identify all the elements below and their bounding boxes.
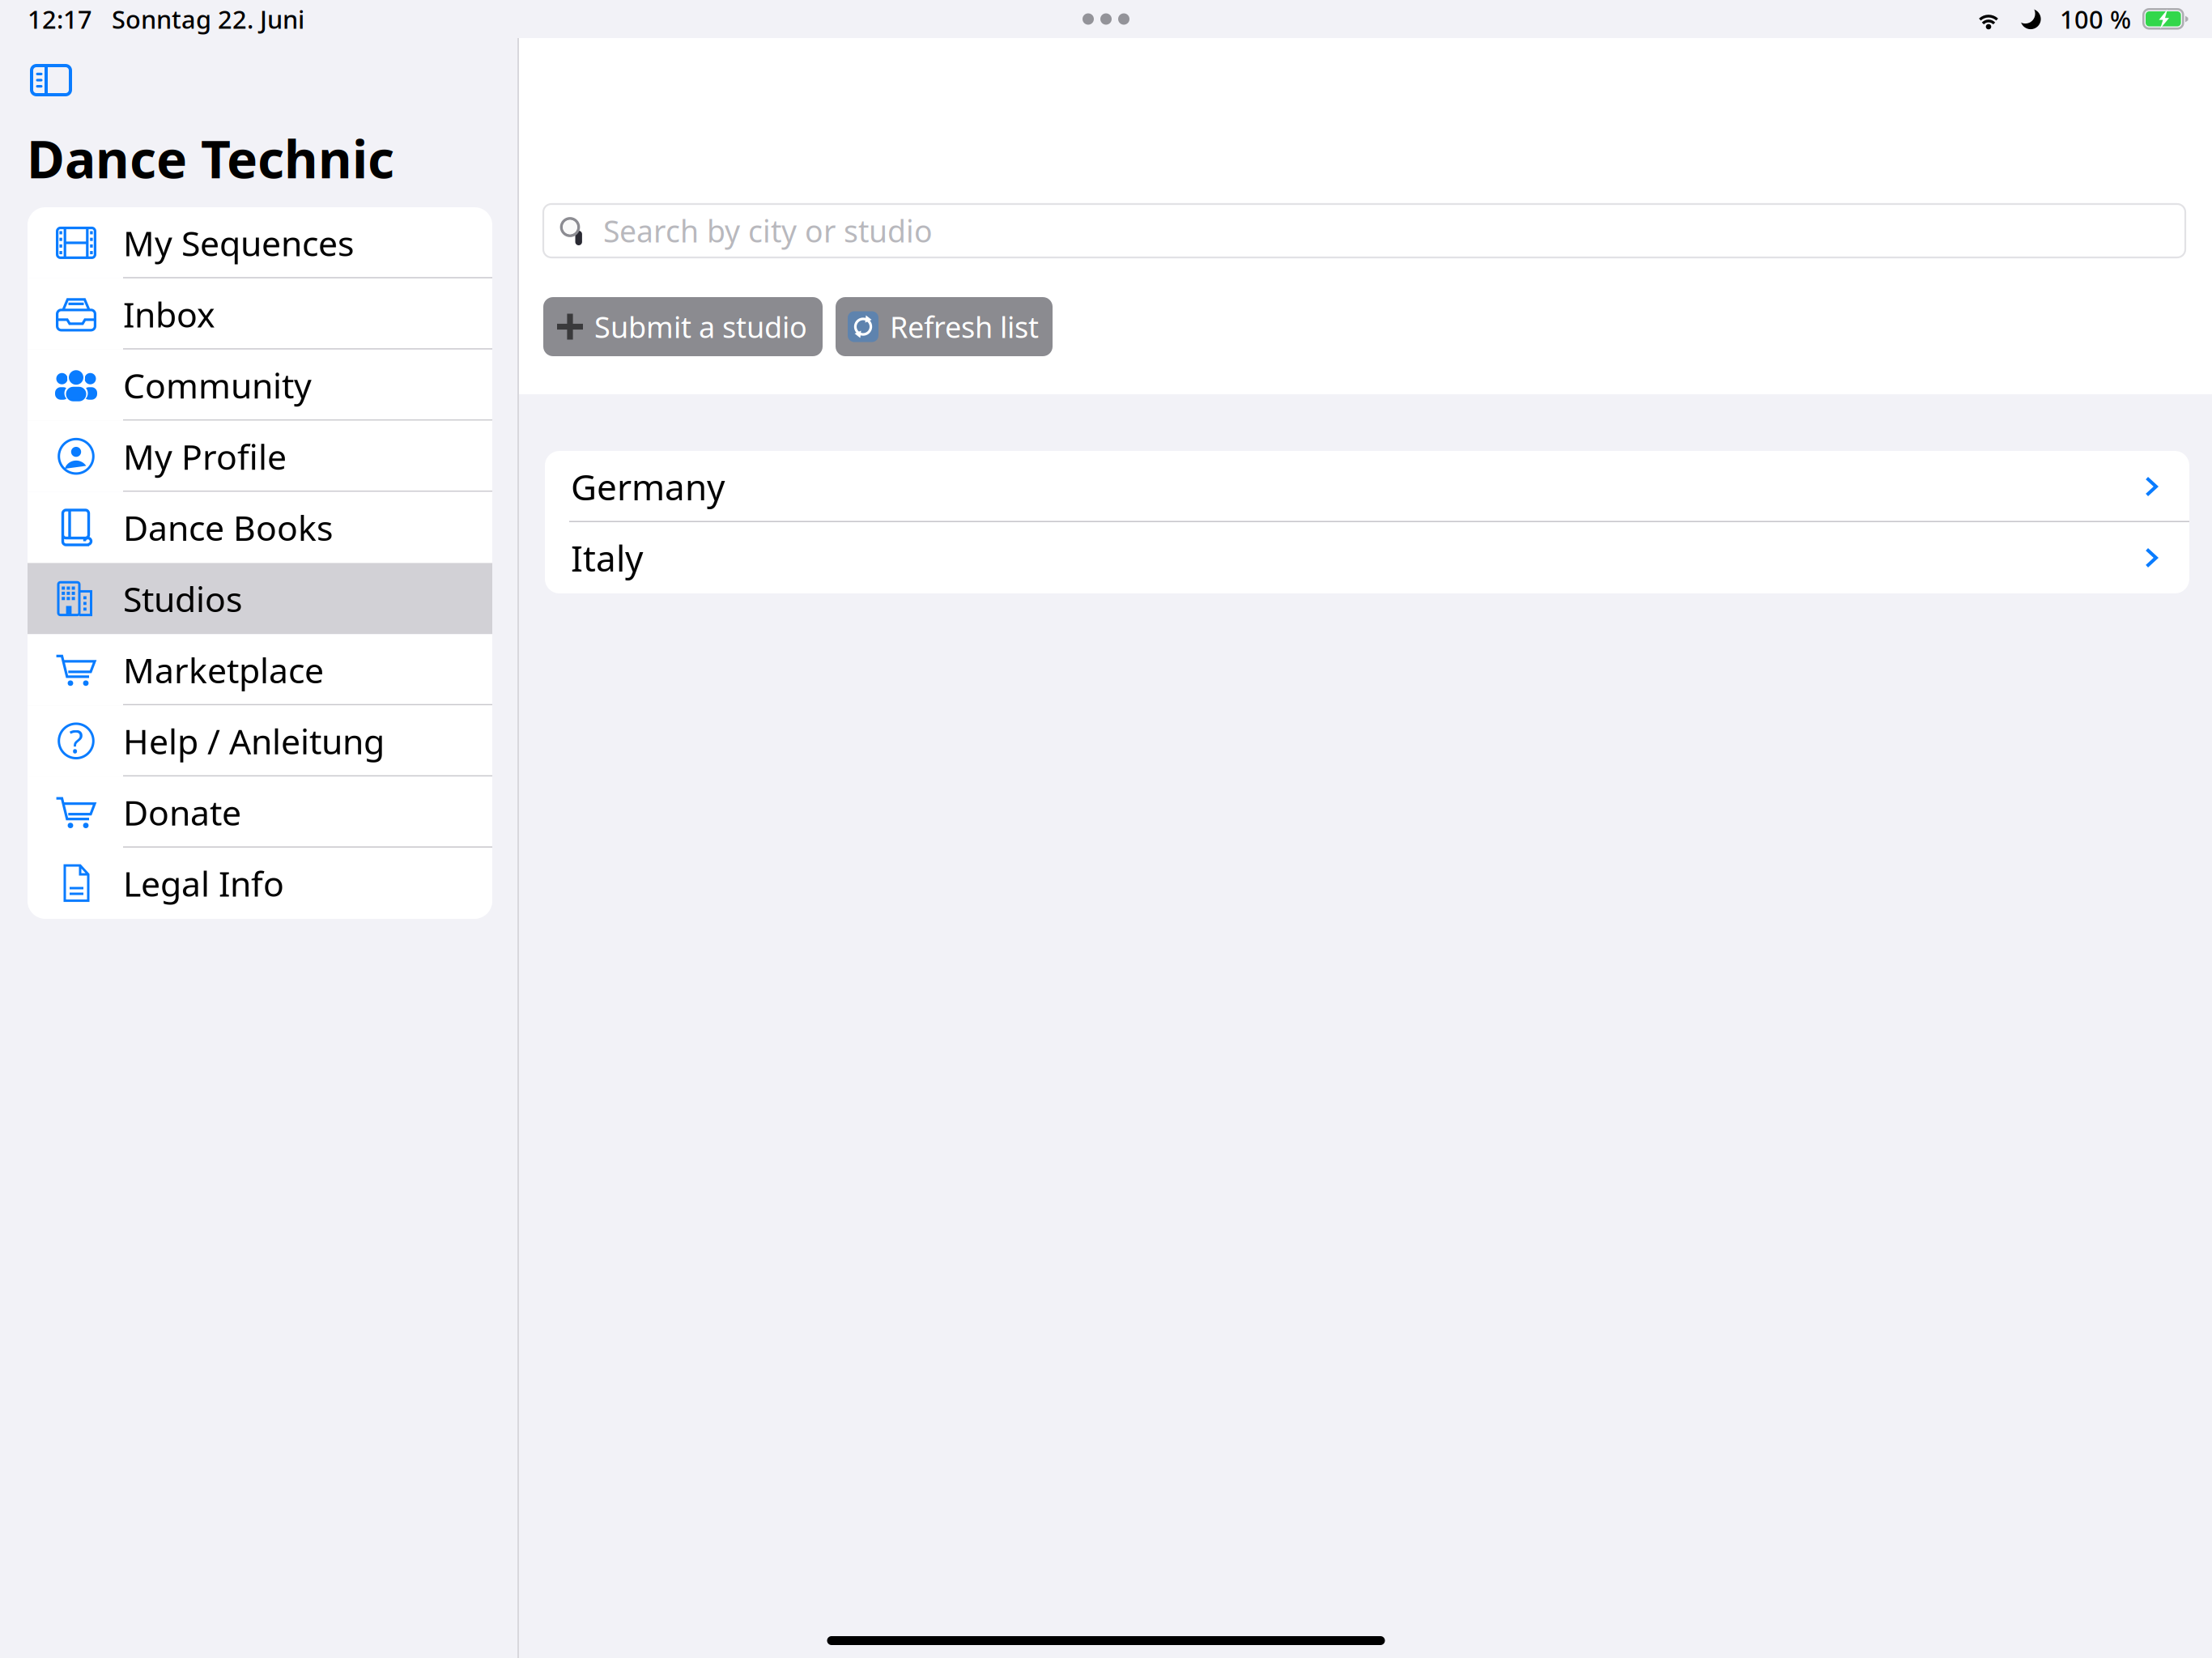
staticText: Inbox — [123, 291, 215, 337]
staticText: Italy — [571, 534, 643, 581]
button[interactable]: Legal Info — [28, 848, 492, 919]
staticText: Refresh list — [890, 307, 1039, 346]
staticText: My Sequences — [123, 220, 354, 266]
staticText: Community — [123, 362, 312, 408]
button[interactable]: My Sequences — [28, 207, 492, 278]
staticText: My Profile — [123, 433, 287, 479]
staticText: Dance Books — [123, 505, 333, 550]
staticText: Studios — [123, 576, 242, 622]
staticText: 12:17 — [28, 3, 92, 35]
button[interactable]: Italy — [545, 522, 2189, 593]
button[interactable]: Refresh list — [836, 297, 1053, 356]
staticText: ? — [69, 719, 83, 762]
staticText: Dance Technic — [27, 124, 394, 193]
button[interactable]: Donate — [28, 777, 492, 848]
staticText: Germany — [571, 463, 725, 510]
button[interactable]: Inbox — [28, 278, 492, 350]
button[interactable]: Community — [28, 350, 492, 421]
button[interactable]: Marketplace — [28, 634, 492, 705]
button[interactable]: Toggle Sidebar — [21, 53, 81, 107]
button[interactable]: Germany — [545, 451, 2189, 522]
staticText: Search by city or studio — [603, 211, 933, 251]
button[interactable]: Studios — [28, 563, 492, 634]
button[interactable]: Dance Books — [28, 492, 492, 563]
staticText: Submit a studio — [594, 307, 807, 346]
button[interactable]: My Profile — [28, 421, 492, 492]
staticText: Sonntag 22. Juni — [112, 3, 304, 35]
button[interactable]: Submit a studio — [543, 297, 823, 356]
button[interactable]: ? — [28, 705, 492, 777]
button[interactable]: Search by city or studio — [543, 204, 2185, 257]
staticText: Marketplace — [123, 647, 324, 693]
staticText: Help / Anleitung — [123, 718, 385, 764]
staticText: 100 % — [2060, 3, 2131, 35]
staticText: Legal Info — [123, 860, 284, 906]
staticText: Donate — [123, 789, 241, 835]
